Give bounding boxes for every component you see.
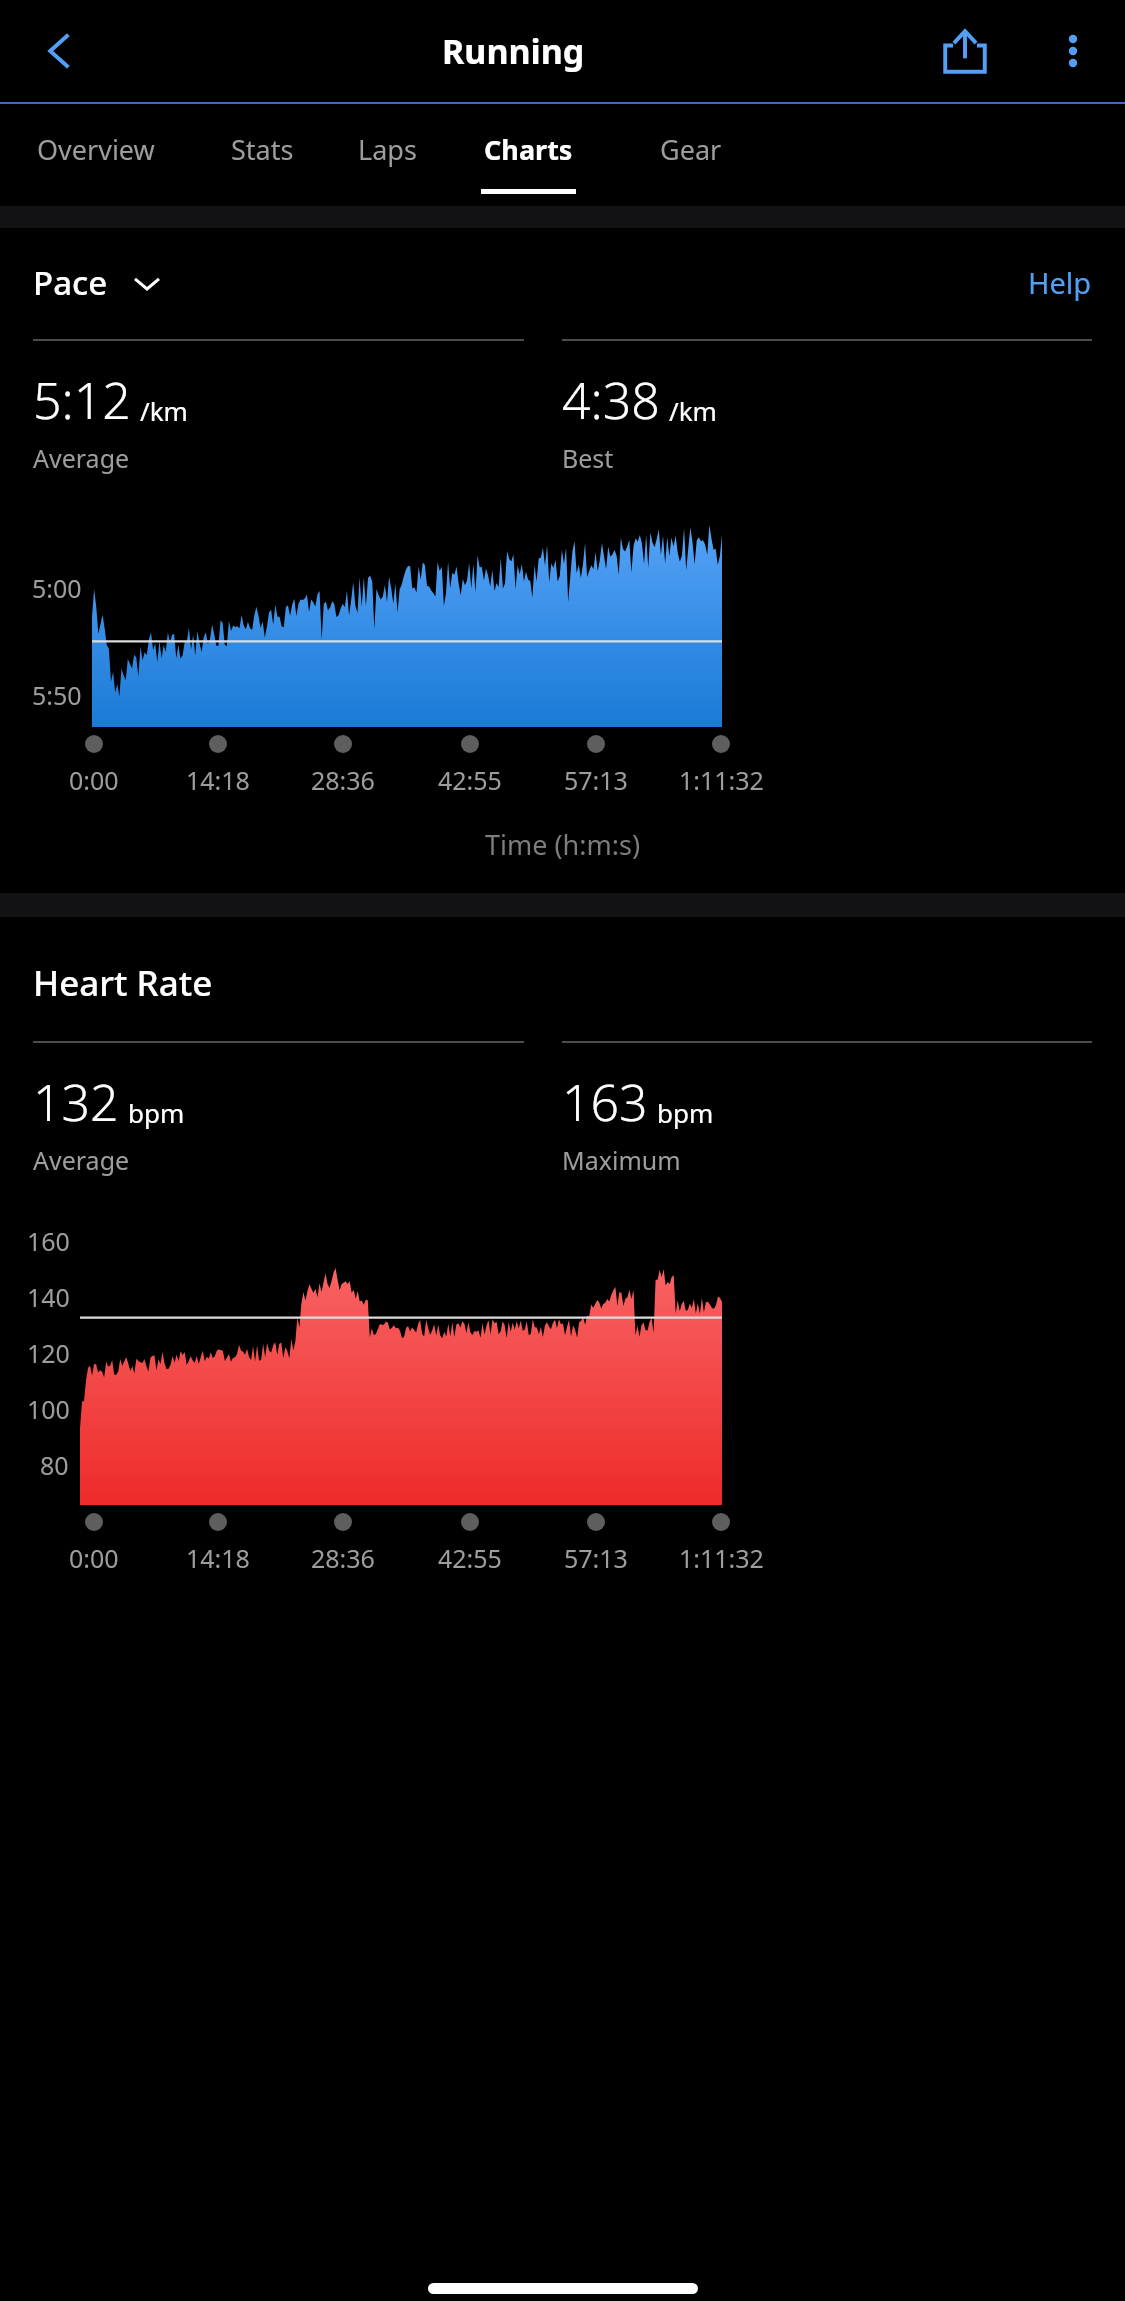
staticText: 28:36 <box>311 763 375 797</box>
staticText: 160 <box>27 1224 70 1258</box>
staticText: Running <box>442 28 585 74</box>
staticText: 14:18 <box>186 1541 250 1575</box>
staticText: 5:00 <box>32 571 82 605</box>
button[interactable]: Share <box>909 0 1021 102</box>
button[interactable]: Laps <box>325 104 450 206</box>
button[interactable]: Gear <box>621 104 761 206</box>
staticText: 0:00 <box>69 1541 119 1575</box>
staticText: 120 <box>27 1336 70 1370</box>
staticText: /km <box>669 393 717 428</box>
staticText: Pace <box>33 260 108 305</box>
button[interactable]: More options <box>1021 0 1125 102</box>
staticText: 163 <box>562 1068 648 1136</box>
staticText: Heart Rate <box>33 959 213 1007</box>
staticText: 57:13 <box>564 1541 628 1575</box>
staticText: 42:55 <box>438 1541 502 1575</box>
staticText: Maximum <box>562 1143 681 1177</box>
staticText: 14:18 <box>186 763 250 797</box>
staticText: /km <box>140 393 188 428</box>
button[interactable]: Charts <box>448 104 608 206</box>
staticText: 28:36 <box>311 1541 375 1575</box>
staticText: 1:11:32 <box>679 1541 764 1575</box>
staticText: Best <box>562 441 614 475</box>
staticText: 80 <box>40 1448 69 1482</box>
staticText: Help <box>1028 263 1092 302</box>
button[interactable]: Overview <box>0 104 196 206</box>
staticText: 5:12 <box>33 366 131 434</box>
staticText: 4:38 <box>562 366 660 434</box>
staticText: bpm <box>657 1095 714 1130</box>
staticText: 0:00 <box>69 763 119 797</box>
button[interactable]: Help <box>1028 263 1092 302</box>
staticText: 100 <box>27 1392 70 1426</box>
button[interactable]: Back <box>0 0 118 102</box>
button[interactable]: Pace <box>33 260 162 305</box>
staticText: Average <box>33 1143 130 1177</box>
staticText: Overview <box>37 131 155 168</box>
staticText: 42:55 <box>438 763 502 797</box>
staticText: 57:13 <box>564 763 628 797</box>
staticText: Charts <box>484 131 573 168</box>
staticText: Laps <box>358 131 417 168</box>
button[interactable]: Stats <box>192 104 332 206</box>
staticText: 140 <box>27 1280 70 1314</box>
staticText: 5:50 <box>32 678 82 712</box>
staticText: Gear <box>660 131 722 168</box>
staticText: Average <box>33 441 130 475</box>
staticText: 1:11:32 <box>679 763 764 797</box>
staticText: Time (h:m:s) <box>485 826 641 863</box>
staticText: 132 <box>33 1068 119 1136</box>
staticText: bpm <box>128 1095 185 1130</box>
staticText: Stats <box>231 131 294 168</box>
